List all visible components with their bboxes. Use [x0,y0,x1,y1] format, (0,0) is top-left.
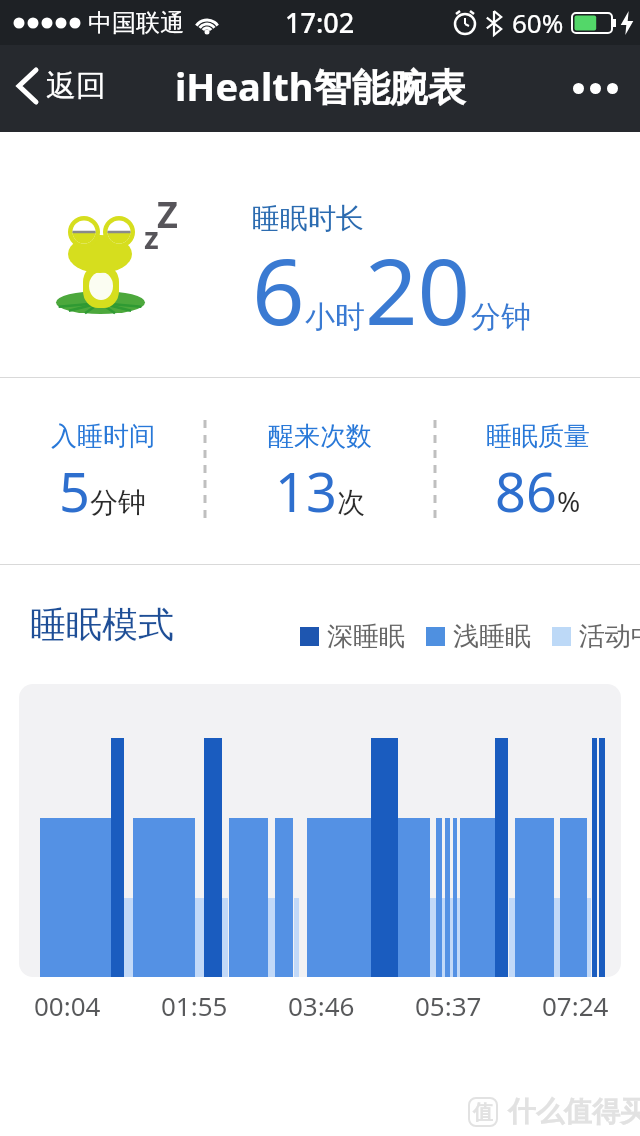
staticText: 值 [473,1100,493,1125]
staticText: 分钟 [471,298,531,336]
staticText: 什么值得买 [508,1094,640,1129]
staticText: 13 [275,454,337,528]
staticText: 次 [337,485,365,520]
staticText: 03:46 [288,988,355,1023]
staticText: 05:37 [415,988,482,1023]
staticText: 活动中 [579,620,640,653]
staticText: 分钟 [90,485,146,520]
staticText: % [557,482,581,520]
staticText: 86 [495,454,557,528]
staticText: z [144,217,159,258]
staticText: 60% [512,5,564,40]
staticText: 浅睡眠 [453,620,531,653]
staticText: 07:24 [542,988,609,1023]
button[interactable] [19,684,621,977]
button[interactable]: 醒来次数 [205,420,435,564]
staticText: 5 [59,454,90,528]
staticText: 睡眠时长 [252,201,364,236]
staticText: 01:55 [161,988,228,1023]
staticText: Z [157,190,178,239]
staticText: 返回 [46,67,106,105]
staticText: 深睡眠 [327,620,405,653]
staticText: 入睡时间 [51,420,155,453]
staticText: 6 [252,227,305,352]
staticText: iHealth智能腕表 [175,60,466,112]
button[interactable] [573,83,618,94]
staticText: 20 [365,227,471,352]
staticText: 醒来次数 [268,420,372,453]
button[interactable]: 睡眠质量 [435,420,640,564]
staticText: 小时 [305,298,365,336]
button[interactable]: 返回 [16,67,106,105]
staticText: 睡眠质量 [486,420,590,453]
staticText: 00:04 [34,988,101,1023]
staticText: 睡眠模式 [30,602,174,647]
button[interactable]: 入睡时间 [0,420,205,564]
staticText: 17:02 [285,4,355,41]
staticText: 中国联通 [88,8,184,38]
